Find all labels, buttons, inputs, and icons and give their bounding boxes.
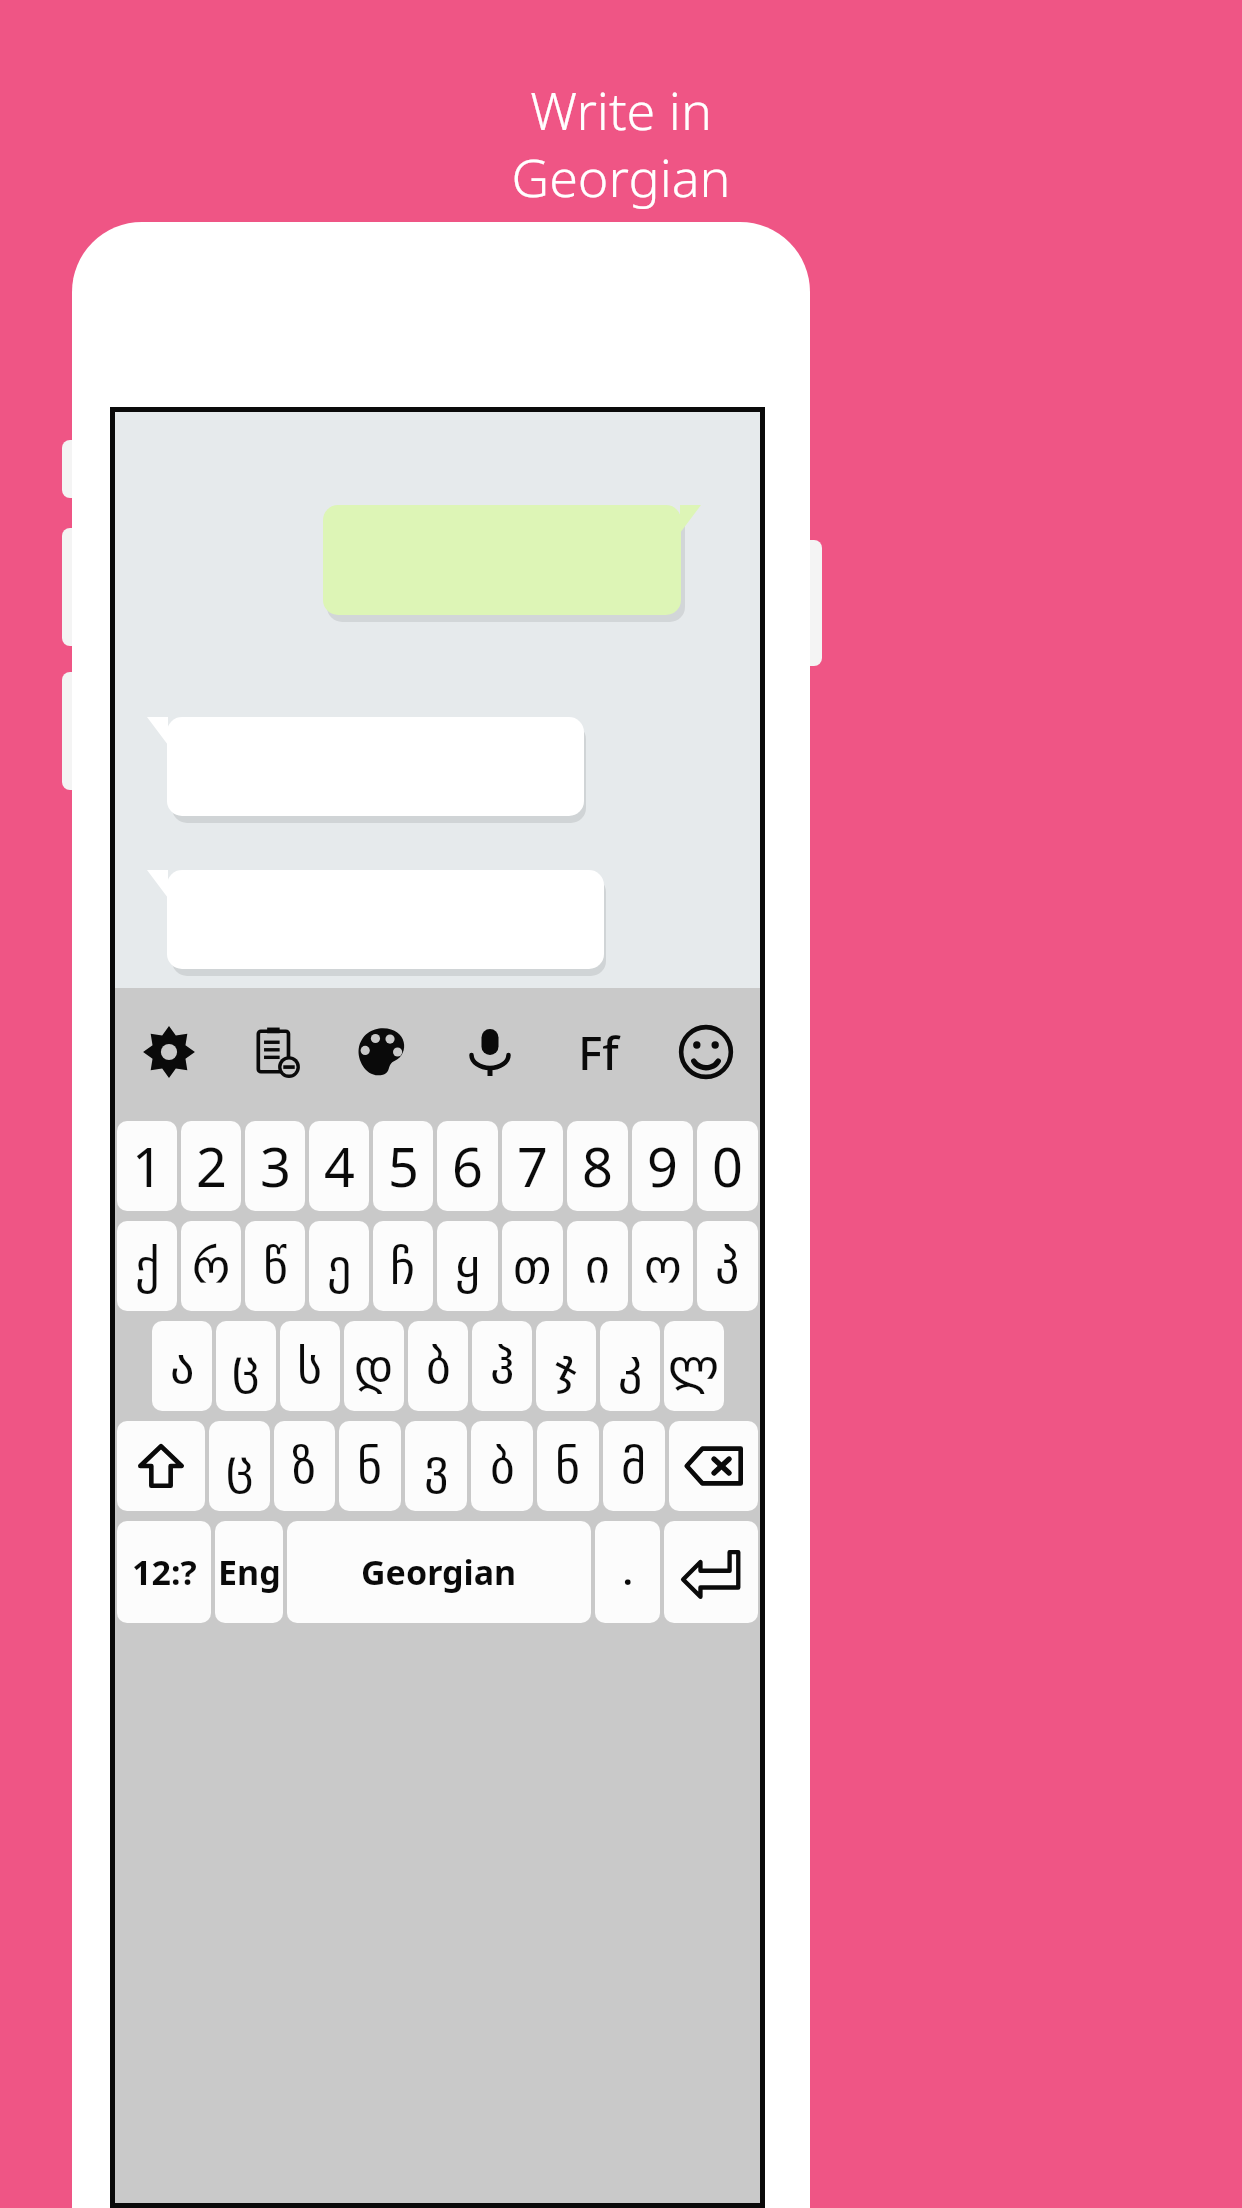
button[interactable]: ჰ: [472, 1321, 532, 1411]
staticText: პ: [715, 1238, 740, 1294]
staticText: 9: [647, 1129, 678, 1203]
staticText: ვ: [424, 1438, 449, 1494]
button[interactable]: .: [595, 1521, 660, 1623]
staticText: ც: [232, 1338, 260, 1394]
staticText: ი: [585, 1238, 610, 1294]
button[interactable]: 2: [181, 1121, 241, 1211]
button[interactable]: 4: [309, 1121, 369, 1211]
staticText: ს: [297, 1338, 323, 1394]
staticText: 3: [260, 1129, 291, 1203]
button[interactable]: ბ: [408, 1321, 468, 1411]
staticText: 8: [582, 1129, 613, 1203]
staticText: ც: [226, 1438, 254, 1494]
button[interactable]: 7: [502, 1121, 563, 1211]
staticText: ბ: [426, 1338, 451, 1394]
staticText: ქ: [135, 1238, 160, 1294]
button[interactable]: ც: [209, 1421, 270, 1511]
staticText: 7: [517, 1129, 548, 1203]
button[interactable]: ც: [216, 1321, 276, 1411]
button[interactable]: ვ: [405, 1421, 467, 1511]
button[interactable]: 9: [632, 1121, 693, 1211]
staticText: 1: [132, 1129, 163, 1203]
button[interactable]: Emoji: [652, 988, 760, 1116]
staticText: Georgian: [361, 1549, 517, 1595]
button[interactable]: ა: [152, 1321, 212, 1411]
staticText: 12:?: [132, 1549, 197, 1595]
staticText: ჯ: [555, 1338, 577, 1394]
button[interactable]: დ: [344, 1321, 404, 1411]
staticText: ნ: [555, 1438, 581, 1494]
button[interactable]: ლ: [664, 1321, 724, 1411]
button[interactable]: კ: [600, 1321, 660, 1411]
staticText: ბ: [490, 1438, 515, 1494]
staticText: ჰ: [490, 1338, 515, 1394]
button[interactable]: 1: [117, 1121, 177, 1211]
staticText: 0: [712, 1129, 743, 1203]
staticText: ა: [170, 1338, 195, 1394]
staticText: ო: [644, 1238, 682, 1294]
button[interactable]: Eng: [215, 1521, 283, 1623]
button[interactable]: Settings: [115, 988, 222, 1116]
staticText: წ: [263, 1238, 288, 1294]
button[interactable]: Theme: [329, 988, 436, 1116]
staticText: ჩ: [390, 1238, 416, 1294]
button[interactable]: პ: [697, 1221, 758, 1311]
staticText: თ: [513, 1238, 552, 1294]
staticText: ნ: [357, 1438, 383, 1494]
staticText: Eng: [218, 1549, 281, 1595]
button[interactable]: ჩ: [373, 1221, 433, 1311]
button[interactable]: თ: [502, 1221, 563, 1311]
staticText: კ: [618, 1338, 643, 1394]
button[interactable]: რ: [181, 1221, 241, 1311]
staticText: 4: [324, 1129, 355, 1203]
button[interactable]: ე: [309, 1221, 369, 1311]
staticText: .: [623, 1549, 633, 1595]
staticText: 6: [452, 1129, 483, 1203]
button[interactable]: 3: [245, 1121, 305, 1211]
button[interactable]: Font size: [544, 988, 652, 1116]
button[interactable]: 12:?: [117, 1521, 211, 1623]
button[interactable]: ს: [280, 1321, 340, 1411]
button[interactable]: 5: [373, 1121, 433, 1211]
staticText: მ: [621, 1438, 647, 1494]
button[interactable]: ყ: [437, 1221, 498, 1311]
staticText: რ: [192, 1238, 231, 1294]
button[interactable]: მ: [603, 1421, 665, 1511]
staticText: დ: [354, 1338, 394, 1394]
staticText: ზ: [292, 1438, 317, 1494]
button[interactable]: Enter: [664, 1521, 758, 1623]
button[interactable]: Georgian: [287, 1521, 591, 1623]
button[interactable]: 6: [437, 1121, 498, 1211]
staticText: 5: [388, 1129, 419, 1203]
button[interactable]: Backspace: [669, 1421, 758, 1511]
button[interactable]: 0: [697, 1121, 758, 1211]
button[interactable]: ი: [567, 1221, 628, 1311]
button[interactable]: ნ: [339, 1421, 401, 1511]
staticText: ყ: [455, 1238, 480, 1294]
button[interactable]: ჯ: [536, 1321, 596, 1411]
button[interactable]: ბ: [471, 1421, 533, 1511]
staticText: ლ: [668, 1338, 720, 1394]
button[interactable]: Shift: [117, 1421, 205, 1511]
button[interactable]: Voice input: [436, 988, 544, 1116]
staticText: ე: [327, 1238, 352, 1294]
button[interactable]: ზ: [274, 1421, 335, 1511]
button[interactable]: წ: [245, 1221, 305, 1311]
button[interactable]: ო: [632, 1221, 693, 1311]
button[interactable]: 8: [567, 1121, 628, 1211]
button[interactable]: ქ: [117, 1221, 177, 1311]
staticText: 2: [196, 1129, 227, 1203]
button[interactable]: Clipboard: [222, 988, 329, 1116]
button[interactable]: ნ: [537, 1421, 599, 1511]
staticText: Write in Georgian: [511, 74, 731, 213]
staticText: Ff: [578, 1021, 619, 1084]
